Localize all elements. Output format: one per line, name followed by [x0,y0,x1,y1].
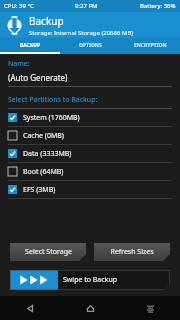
staticText: Storage: Internal Storage (20686 MB) [29,29,134,37]
staticText: System (1760MB) [23,113,80,123]
staticText: Battery: 36% [140,2,176,10]
staticText: Boot (64MB) [23,167,64,177]
button[interactable]: Refresh Sizes [94,243,170,261]
staticText: Swipe to Backup [63,275,118,285]
button[interactable]: Select Storage [10,243,86,261]
staticText: EFS (3MB) [23,185,56,195]
staticText: Select Partitions to Backup: [8,95,98,105]
staticText: BACKUP [20,42,41,49]
staticText: Refresh Sizes [110,247,154,257]
button[interactable]: Home [60,296,120,320]
staticText: 9:27 PM [75,2,98,10]
button[interactable]: Cache (0MB) [0,127,180,145]
staticText: OPTIONS [79,42,102,49]
staticText: Backup [29,14,64,28]
staticText: CPU: 39 °C [4,2,34,10]
button[interactable]: System (1760MB) [0,109,180,127]
button[interactable]: EFS (3MB) [0,181,180,199]
staticText: ENCRYPTION [134,42,167,49]
button[interactable]: Data (3333MB) [0,145,180,163]
staticText: Name: [8,59,30,69]
button[interactable]: Boot (64MB) [0,163,180,181]
staticText: Select Storage [25,247,72,257]
button[interactable]: OPTIONS [60,38,120,52]
staticText: Cache (0MB) [23,131,64,141]
staticText: (Auto Generate) [8,72,68,83]
button[interactable]: Swipe to Backup [10,270,170,290]
button[interactable]: BACKUP [0,38,60,52]
button[interactable]: Recent apps [120,296,180,320]
button[interactable]: ENCRYPTION [120,38,180,52]
button[interactable]: Back [0,296,60,320]
staticText: Data (3333MB) [23,149,72,159]
